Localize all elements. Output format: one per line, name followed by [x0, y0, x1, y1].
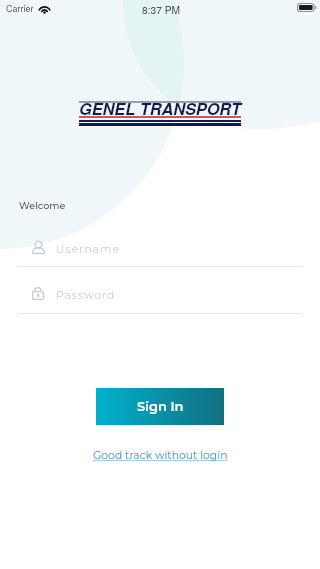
staticText: Welcome: [19, 200, 66, 212]
staticText: 8:37 PM: [142, 2, 180, 17]
staticText: GENEL TRANSPORT: [79, 97, 241, 120]
button[interactable]: Username: [0, 236, 320, 268]
button[interactable]: Good track without login: [0, 445, 320, 466]
button[interactable]: Password: [0, 282, 320, 315]
staticText: Sign In: [137, 398, 184, 414]
staticText: Password: [56, 289, 116, 302]
staticText: Carrier: [6, 2, 34, 15]
staticText: Username: [56, 243, 120, 256]
button[interactable]: Sign In: [96, 388, 224, 425]
staticText: Good track without login: [93, 449, 228, 462]
